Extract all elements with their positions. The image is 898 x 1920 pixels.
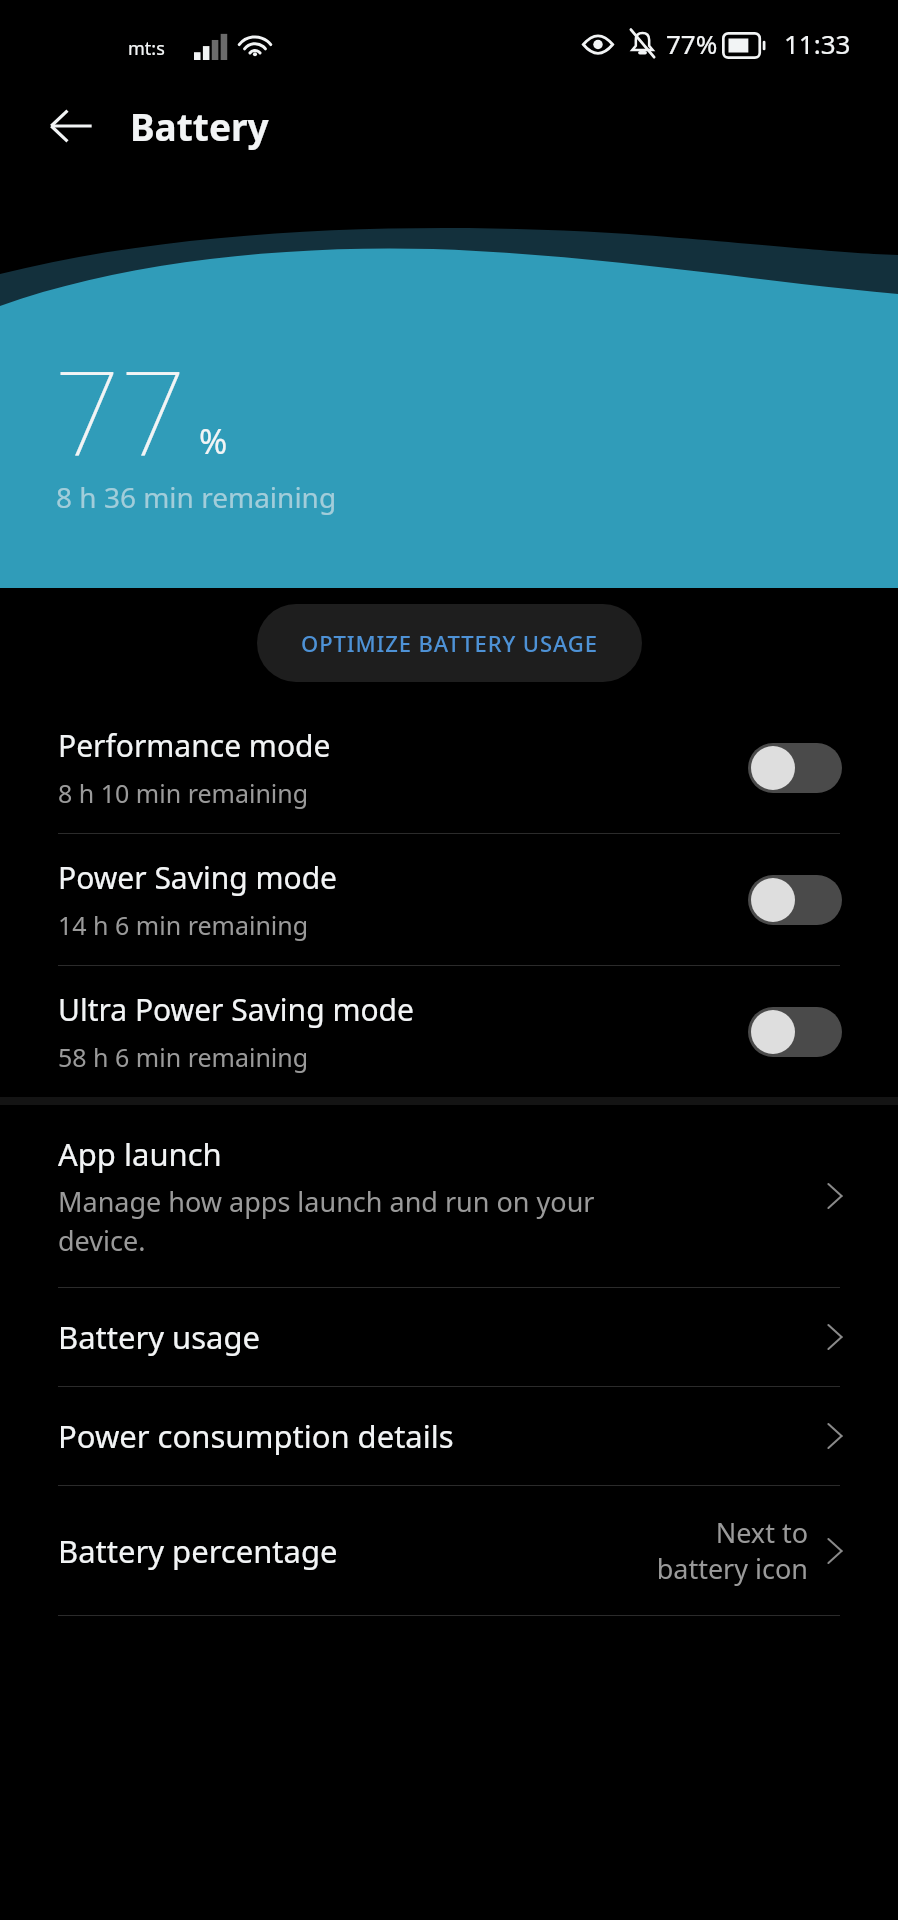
- button[interactable]: Power consumption details: [0, 1387, 898, 1485]
- staticText: Power consumption details: [58, 1415, 454, 1457]
- staticText: Next to battery icon: [656, 1514, 808, 1587]
- staticText: App launch: [58, 1133, 222, 1175]
- button[interactable]: Ultra Power Saving mode switch: [748, 1007, 842, 1057]
- staticText: Battery: [130, 101, 269, 151]
- staticText: mt:s: [128, 36, 165, 61]
- staticText: Manage how apps launch and run on your d…: [58, 1183, 595, 1259]
- staticText: 8 h 36 min remaining: [56, 478, 337, 516]
- staticText: 8 h 10 min remaining: [58, 776, 309, 810]
- button[interactable]: Back: [34, 89, 108, 163]
- staticText: Ultra Power Saving mode: [58, 989, 414, 1030]
- staticText: 11:33: [784, 26, 851, 61]
- staticText: Performance mode: [58, 725, 331, 766]
- button[interactable]: Battery percentage: [0, 1486, 898, 1615]
- button[interactable]: OPTIMIZE BATTERY USAGE: [257, 604, 642, 682]
- staticText: 77%: [666, 26, 718, 61]
- button[interactable]: Power Saving mode: [0, 834, 898, 965]
- staticText: Power Saving mode: [58, 857, 338, 898]
- staticText: 14 h 6 min remaining: [58, 908, 309, 942]
- button[interactable]: App launch: [0, 1105, 898, 1287]
- staticText: 58 h 6 min remaining: [58, 1040, 309, 1074]
- button[interactable]: Performance mode: [0, 702, 898, 833]
- button[interactable]: Performance mode switch: [748, 743, 842, 793]
- button[interactable]: Battery usage: [0, 1288, 898, 1386]
- staticText: 77: [54, 332, 187, 490]
- staticText: OPTIMIZE BATTERY USAGE: [301, 628, 598, 658]
- staticText: Battery percentage: [58, 1530, 338, 1572]
- button[interactable]: Ultra Power Saving mode: [0, 966, 898, 1097]
- button[interactable]: Power Saving mode switch: [748, 875, 842, 925]
- staticText: Battery usage: [58, 1316, 261, 1358]
- staticText: %: [199, 418, 228, 464]
